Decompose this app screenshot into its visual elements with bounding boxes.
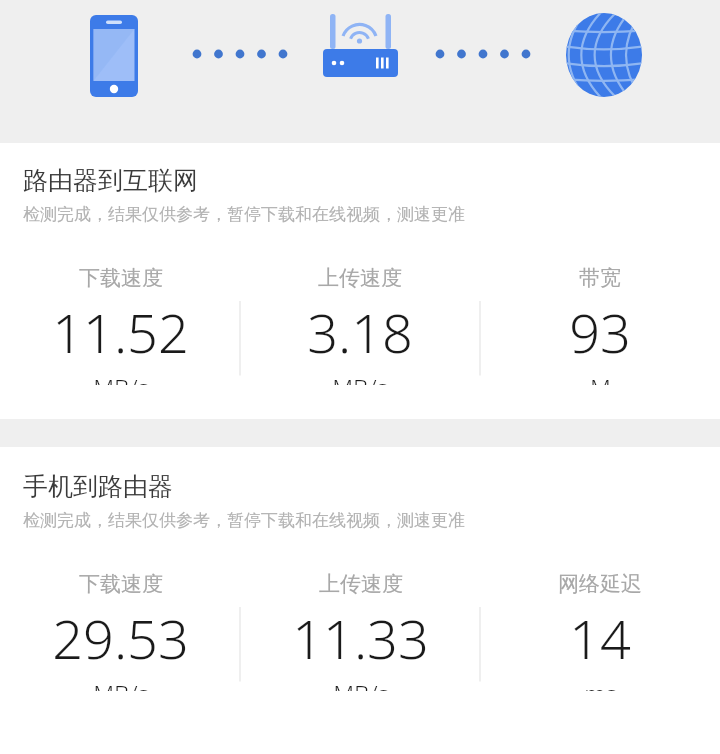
- staticText: 检测完成，结果仅供参考，暂停下载和在线视频，测速更准: [23, 510, 465, 531]
- staticText: MB/s: [93, 677, 149, 691]
- button[interactable]: 带宽: [480, 265, 720, 385]
- staticText: 上传速度: [319, 571, 403, 597]
- staticText: 上传速度: [318, 265, 402, 291]
- button[interactable]: 下载速度: [0, 571, 240, 691]
- staticText: 93: [569, 295, 631, 369]
- button[interactable]: 上传速度: [240, 571, 480, 691]
- staticText: ms: [584, 677, 617, 691]
- staticText: 3.18: [307, 295, 413, 369]
- other: Network path: phone to router to interne…: [0, 0, 720, 143]
- staticText: 14: [569, 601, 631, 675]
- button[interactable]: 路由器到互联网: [0, 143, 720, 419]
- staticText: 11.33: [292, 601, 429, 675]
- button[interactable]: 网络延迟: [480, 571, 720, 691]
- staticText: 下载速度: [79, 265, 163, 291]
- staticText: 11.52: [52, 295, 189, 369]
- staticText: MB/s: [93, 371, 149, 385]
- staticText: 手机到路由器: [23, 471, 173, 502]
- staticText: MB/s: [332, 371, 388, 385]
- staticText: M: [590, 371, 611, 385]
- staticText: MB/s: [333, 677, 389, 691]
- button[interactable]: 手机到路由器: [0, 447, 720, 725]
- staticText: 检测完成，结果仅供参考，暂停下载和在线视频，测速更准: [23, 204, 465, 225]
- staticText: 下载速度: [79, 571, 163, 597]
- staticText: 路由器到互联网: [23, 165, 198, 196]
- button[interactable]: 下载速度: [0, 265, 240, 385]
- staticText: 网络延迟: [558, 571, 642, 597]
- staticText: 带宽: [579, 265, 621, 291]
- button[interactable]: 上传速度: [240, 265, 480, 385]
- staticText: 29.53: [52, 601, 189, 675]
